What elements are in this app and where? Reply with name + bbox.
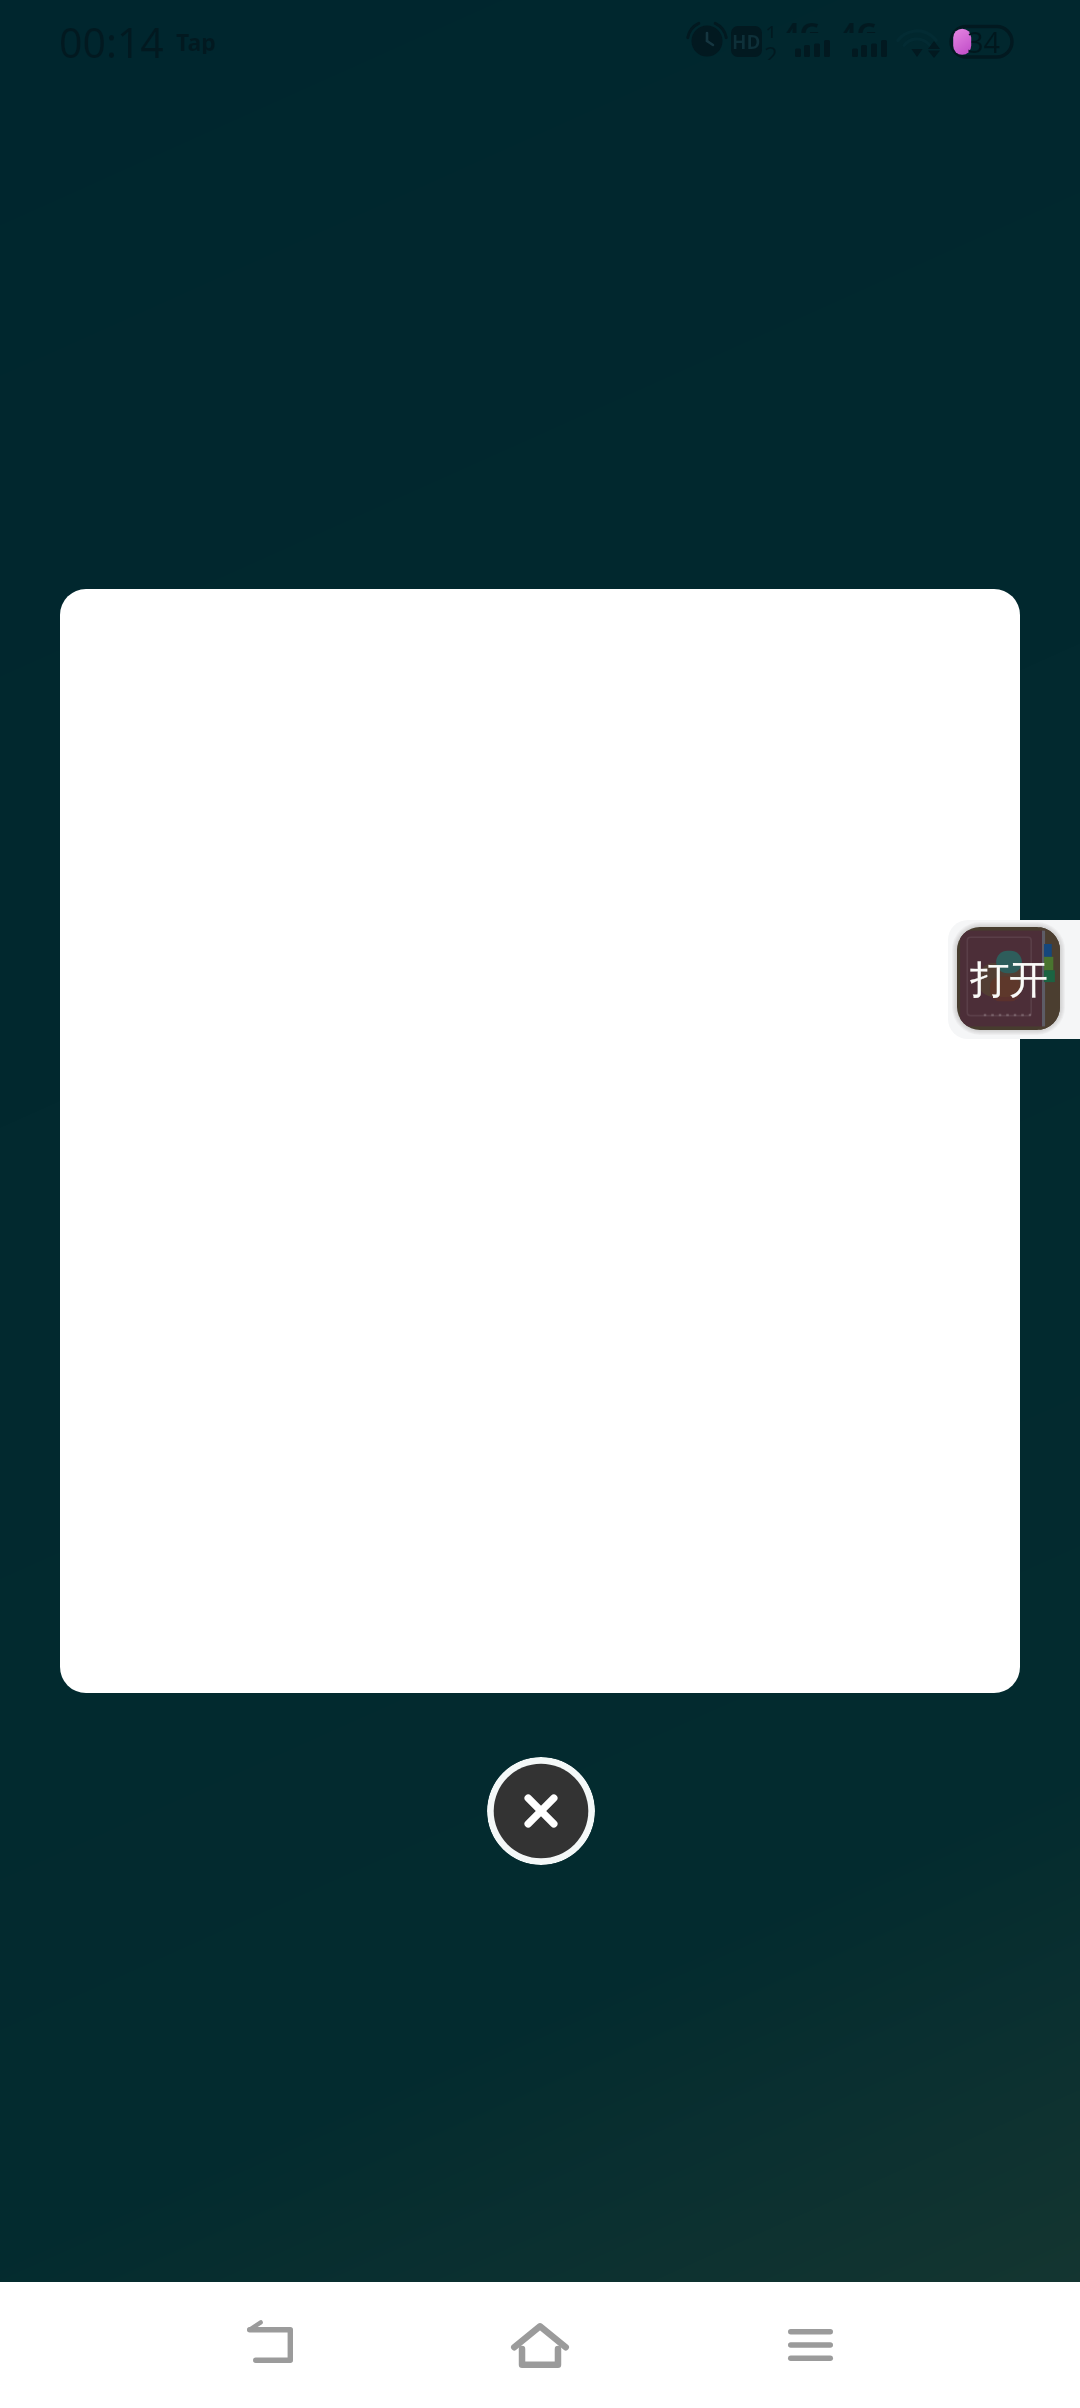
button[interactable]: Menu	[720, 2282, 900, 2408]
staticText: 34	[967, 22, 1001, 53]
staticText: 1	[765, 18, 778, 38]
staticText: HD	[732, 29, 761, 55]
staticText: 2	[764, 38, 778, 60]
staticText: 4G	[840, 13, 878, 33]
staticText: Tap	[176, 26, 216, 54]
staticText: 打开	[970, 955, 1048, 1004]
staticText: 4G	[783, 13, 821, 33]
staticText: 00:14	[59, 14, 164, 62]
button[interactable]: Home	[450, 2282, 630, 2408]
button[interactable]: App preview	[60, 589, 1020, 1693]
button[interactable]: Close	[487, 1757, 595, 1865]
button[interactable]: Open app	[948, 920, 1080, 1039]
button[interactable]: Back	[180, 2282, 360, 2408]
